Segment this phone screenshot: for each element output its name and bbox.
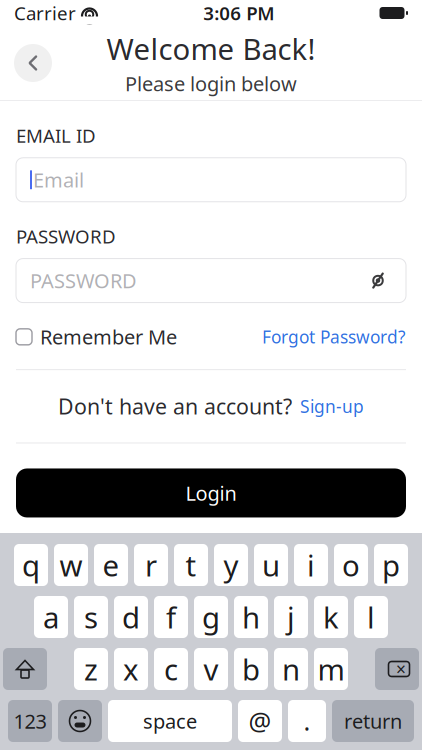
button[interactable]: v [194,648,228,690]
staticText: c [164,649,178,688]
button[interactable]: f [154,596,188,638]
staticText: w [59,545,82,584]
button[interactable]: Forgot Password? [262,320,406,353]
staticText: Sign-up [300,395,364,418]
staticText: Email [33,166,84,193]
staticText: Please login below [125,70,297,97]
button[interactable]: z [74,648,108,690]
staticText: i [307,545,315,584]
staticText: e [102,545,119,584]
staticText: g [202,597,220,636]
button[interactable]: o [334,544,368,586]
staticText: t [185,545,196,584]
staticText: PASSWORD [16,224,116,249]
staticText: Remember Me [40,324,177,350]
staticText: q [22,545,40,584]
button[interactable]: j [274,596,308,638]
staticText: l [367,597,375,636]
staticText: @ [248,704,271,738]
button[interactable]: Emoji [58,700,102,742]
button[interactable]: space [108,700,232,742]
staticText: o [342,545,360,584]
button[interactable]: return [332,700,414,742]
staticText: 3:06 PM [203,1,274,25]
button[interactable]: Back [11,41,55,85]
staticText: return [344,708,402,734]
button[interactable]: l [354,596,388,638]
staticText: space [143,708,197,734]
button[interactable]: s [74,596,108,638]
staticText: d [122,597,140,636]
staticText: z [84,649,98,688]
button[interactable]: r [134,544,168,586]
staticText: s [84,597,98,636]
button[interactable]: Remember Me [16,319,177,355]
staticText: × [396,657,406,680]
staticText: k [323,597,339,636]
button[interactable]: Login [16,468,406,517]
staticText: j [287,597,295,636]
staticText: m [317,649,344,688]
button[interactable]: b [234,648,268,690]
button[interactable]: . [288,700,326,742]
button[interactable]: x [114,648,148,690]
button[interactable]: a [34,596,68,638]
button[interactable]: Sign-up [300,395,364,418]
staticText: x [123,649,139,688]
staticText: v [203,649,218,688]
button[interactable]: Show password [362,265,394,297]
staticText: f [166,597,176,636]
staticText: 123 [13,708,46,734]
button[interactable]: Delete [375,648,419,690]
button[interactable]: n [274,648,308,690]
button[interactable]: h [234,596,268,638]
button[interactable]: e [94,544,128,586]
staticText: a [43,597,59,636]
staticText: Welcome Back! [106,29,315,68]
button[interactable]: c [154,648,188,690]
staticText: . [303,704,310,738]
button[interactable]: k [314,596,348,638]
staticText: Login [185,480,236,506]
staticText: u [262,545,280,584]
staticText: Carrier [14,1,76,25]
staticText: h [242,597,260,636]
button[interactable]: p [374,544,408,586]
staticText: EMAIL ID [16,123,96,148]
staticText: Don't have an account? [58,392,292,420]
button[interactable]: g [194,596,228,638]
staticText: y [223,545,238,584]
staticText: PASSWORD [30,267,137,294]
staticText: Forgot Password? [262,325,406,348]
button[interactable]: y [214,544,248,586]
button[interactable]: q [14,544,48,586]
button[interactable]: Shift [3,648,47,690]
button[interactable]: m [314,648,348,690]
button[interactable]: w [54,544,88,586]
button[interactable]: @ [238,700,282,742]
staticText: p [382,545,400,584]
staticText: b [242,649,260,688]
button[interactable]: u [254,544,288,586]
button[interactable]: d [114,596,148,638]
button[interactable]: 123 [8,700,52,742]
button[interactable]: t [174,544,208,586]
staticText: r [145,545,157,584]
staticText: n [282,649,300,688]
button[interactable]: i [294,544,328,586]
